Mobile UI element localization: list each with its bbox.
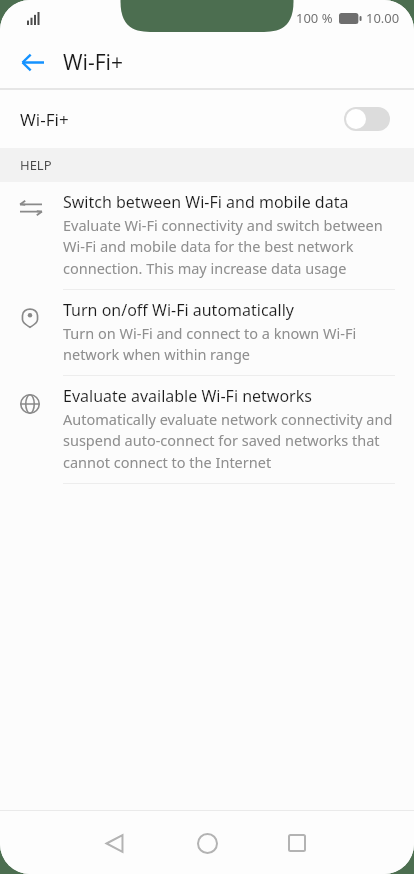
button[interactable]: Back [90, 819, 138, 867]
staticText: Automatically evaluate network connectiv… [63, 409, 393, 473]
button[interactable]: Turn on/off Wi-Fi automatically [0, 290, 414, 375]
button[interactable]: Recent apps [273, 819, 321, 867]
staticText: Evaluate Wi-Fi connectivity and switch b… [63, 215, 383, 279]
button[interactable]: Back [10, 40, 54, 84]
staticText: HELP [20, 156, 52, 174]
button[interactable]: Wi-Fi+ toggle [344, 107, 390, 131]
staticText: 10.00 [366, 9, 400, 27]
button[interactable]: Switch between Wi-Fi and mobile data [0, 182, 414, 289]
staticText: Turn on Wi-Fi and connect to a known Wi-… [63, 323, 357, 365]
button[interactable]: Home [183, 819, 231, 867]
staticText: Wi-Fi+ [63, 48, 124, 77]
button[interactable]: Wi-Fi+ [0, 90, 414, 148]
staticText: Turn on/off Wi-Fi automatically [63, 299, 294, 321]
staticText: Switch between Wi-Fi and mobile data [63, 191, 349, 213]
staticText: 100 % [296, 9, 333, 27]
staticText: Wi-Fi+ [20, 108, 69, 131]
staticText: Evaluate available Wi-Fi networks [63, 385, 312, 407]
button[interactable]: Evaluate available Wi-Fi networks [0, 376, 414, 483]
